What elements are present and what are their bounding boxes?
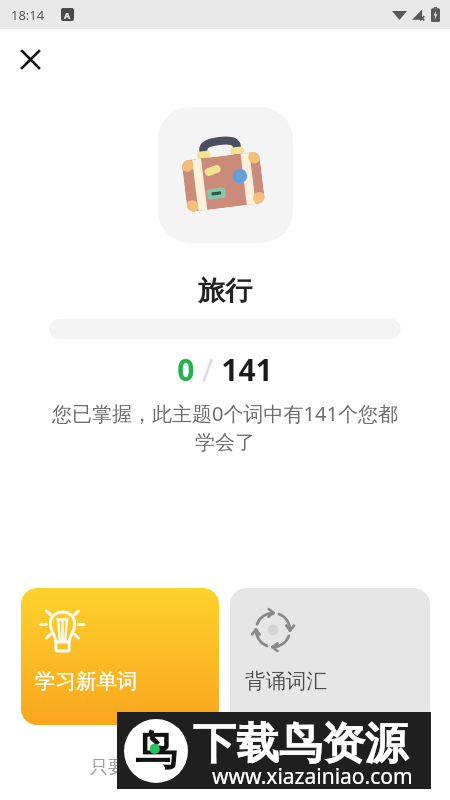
staticText: 背诵词汇 [245,668,327,694]
staticText: 只要坚持每天学习，就能很快掌握 [0,756,450,779]
staticText: 鸟 [135,725,177,778]
staticText: www.xiazainiao.com [212,762,413,791]
button[interactable]: 背诵词汇 [230,588,430,725]
staticText: 您已掌握，此主题0个词中有141个您都 学会了 [0,400,450,455]
staticText: 旅行 [0,274,450,308]
staticText: 下载鸟资源 [193,717,408,771]
staticText: A [64,9,71,21]
staticText: 18:14 [11,6,45,24]
button[interactable]: Close [0,29,60,89]
staticText: 0 / 141 [0,349,450,390]
staticText: 学习新单词 [35,668,138,694]
button[interactable]: 学习新单词 [21,588,219,725]
